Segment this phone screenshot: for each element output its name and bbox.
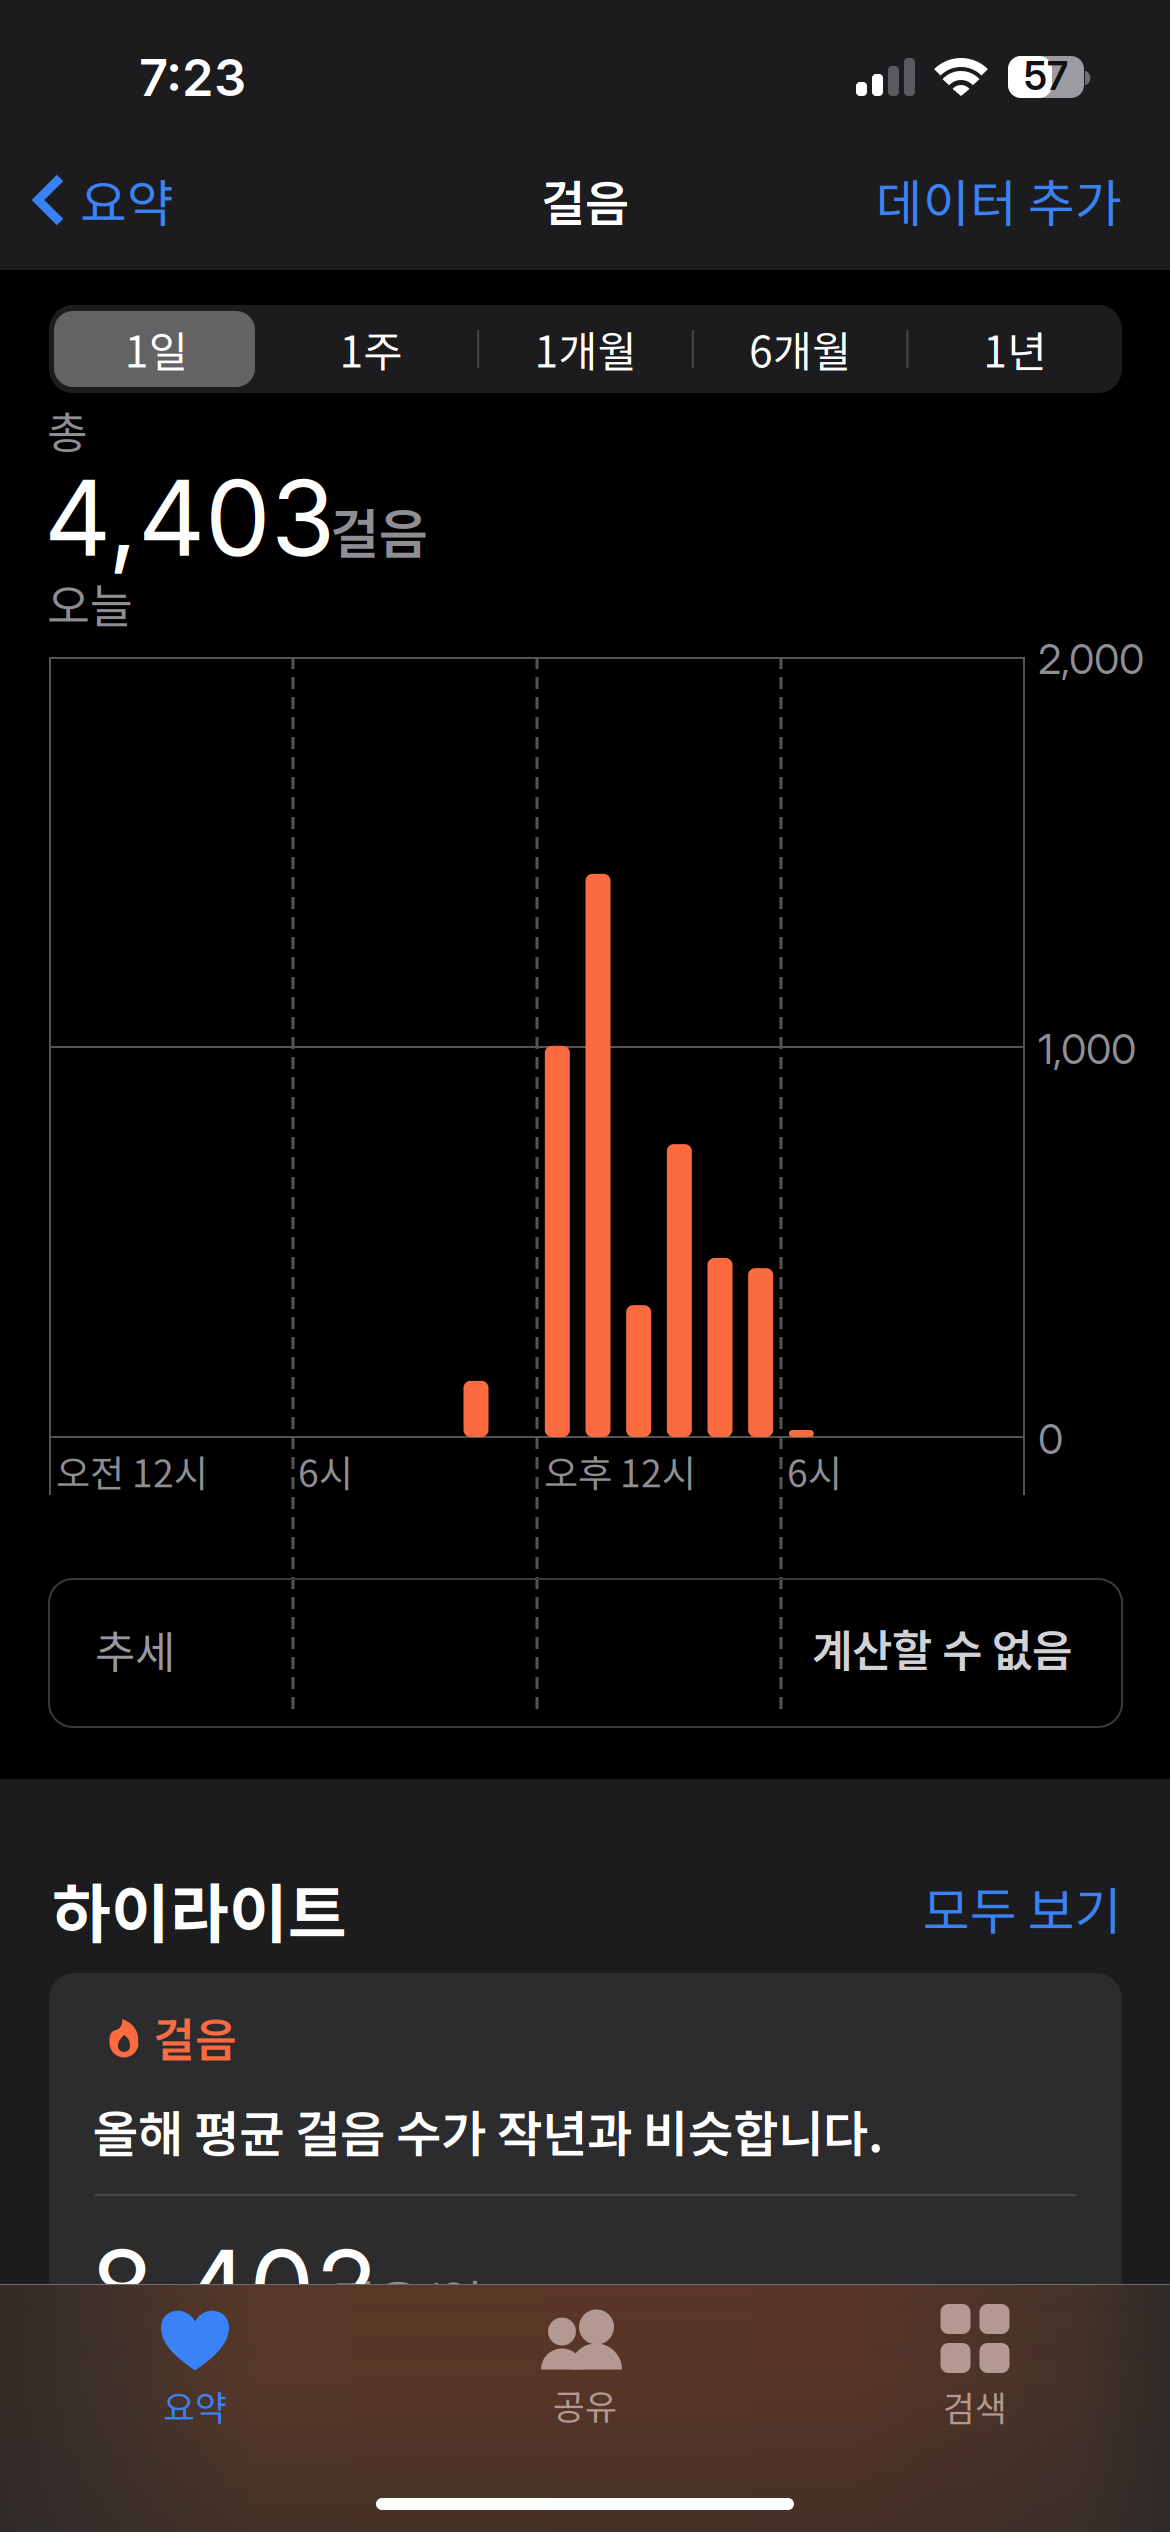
- button[interactable]: 검색: [780, 2284, 1170, 2431]
- staticText: 2,000: [1038, 634, 1144, 684]
- staticText: 1개월: [534, 318, 636, 380]
- staticText: 1주: [339, 318, 402, 380]
- staticText: 0: [1038, 1414, 1063, 1464]
- staticText: 하이라이트: [52, 1863, 347, 1956]
- staticText: 데이터 추가: [876, 163, 1122, 237]
- staticText: 6시: [298, 1444, 353, 1498]
- button[interactable]: 걸음: [49, 1973, 1122, 2413]
- staticText: 7:23: [139, 47, 246, 108]
- staticText: 6개월: [749, 318, 851, 380]
- staticText: 걸음: [153, 2004, 237, 2070]
- button[interactable]: 1개월: [478, 305, 693, 393]
- staticText: 올해 평균 걸음 수가 작년과 비슷합니다.: [93, 2095, 883, 2166]
- button[interactable]: 추세: [49, 1579, 1122, 1727]
- staticText: 요약: [80, 163, 174, 237]
- staticText: 57: [1024, 53, 1068, 99]
- button[interactable]: 6개월: [693, 305, 907, 393]
- button[interactable]: 요약: [0, 144, 202, 256]
- staticText: 4,403: [44, 455, 335, 581]
- staticText: 1년: [983, 318, 1046, 380]
- staticText: 오전 12시: [56, 1444, 208, 1498]
- staticText: 추세: [95, 1617, 175, 1681]
- button[interactable]: 요약: [0, 2284, 390, 2431]
- staticText: 오후 12시: [544, 1444, 696, 1498]
- staticText: 오늘: [47, 569, 133, 637]
- button[interactable]: 1일: [49, 305, 264, 393]
- staticText: 검색: [943, 2381, 1007, 2431]
- staticText: 걸음: [541, 165, 629, 235]
- staticText: 모두 보기: [923, 1871, 1122, 1944]
- button[interactable]: 1년: [907, 305, 1122, 393]
- staticText: 공유: [553, 2379, 617, 2430]
- button[interactable]: 1주: [264, 305, 478, 393]
- staticText: 요약: [163, 2380, 227, 2431]
- staticText: 1일: [125, 318, 188, 380]
- staticText: 총: [47, 398, 87, 462]
- staticText: 6시: [787, 1444, 842, 1498]
- staticText: 걸음/일: [332, 2265, 483, 2334]
- button[interactable]: 데이터 추가: [850, 144, 1148, 256]
- button[interactable]: 공유: [390, 2285, 780, 2430]
- staticText: 1,000: [1038, 1024, 1136, 1074]
- button[interactable]: 모두 보기: [923, 1871, 1122, 1944]
- staticText: 계산할 수 없음: [812, 1616, 1072, 1680]
- staticText: 8,402: [90, 2225, 378, 2351]
- staticText: 걸음: [330, 492, 428, 569]
